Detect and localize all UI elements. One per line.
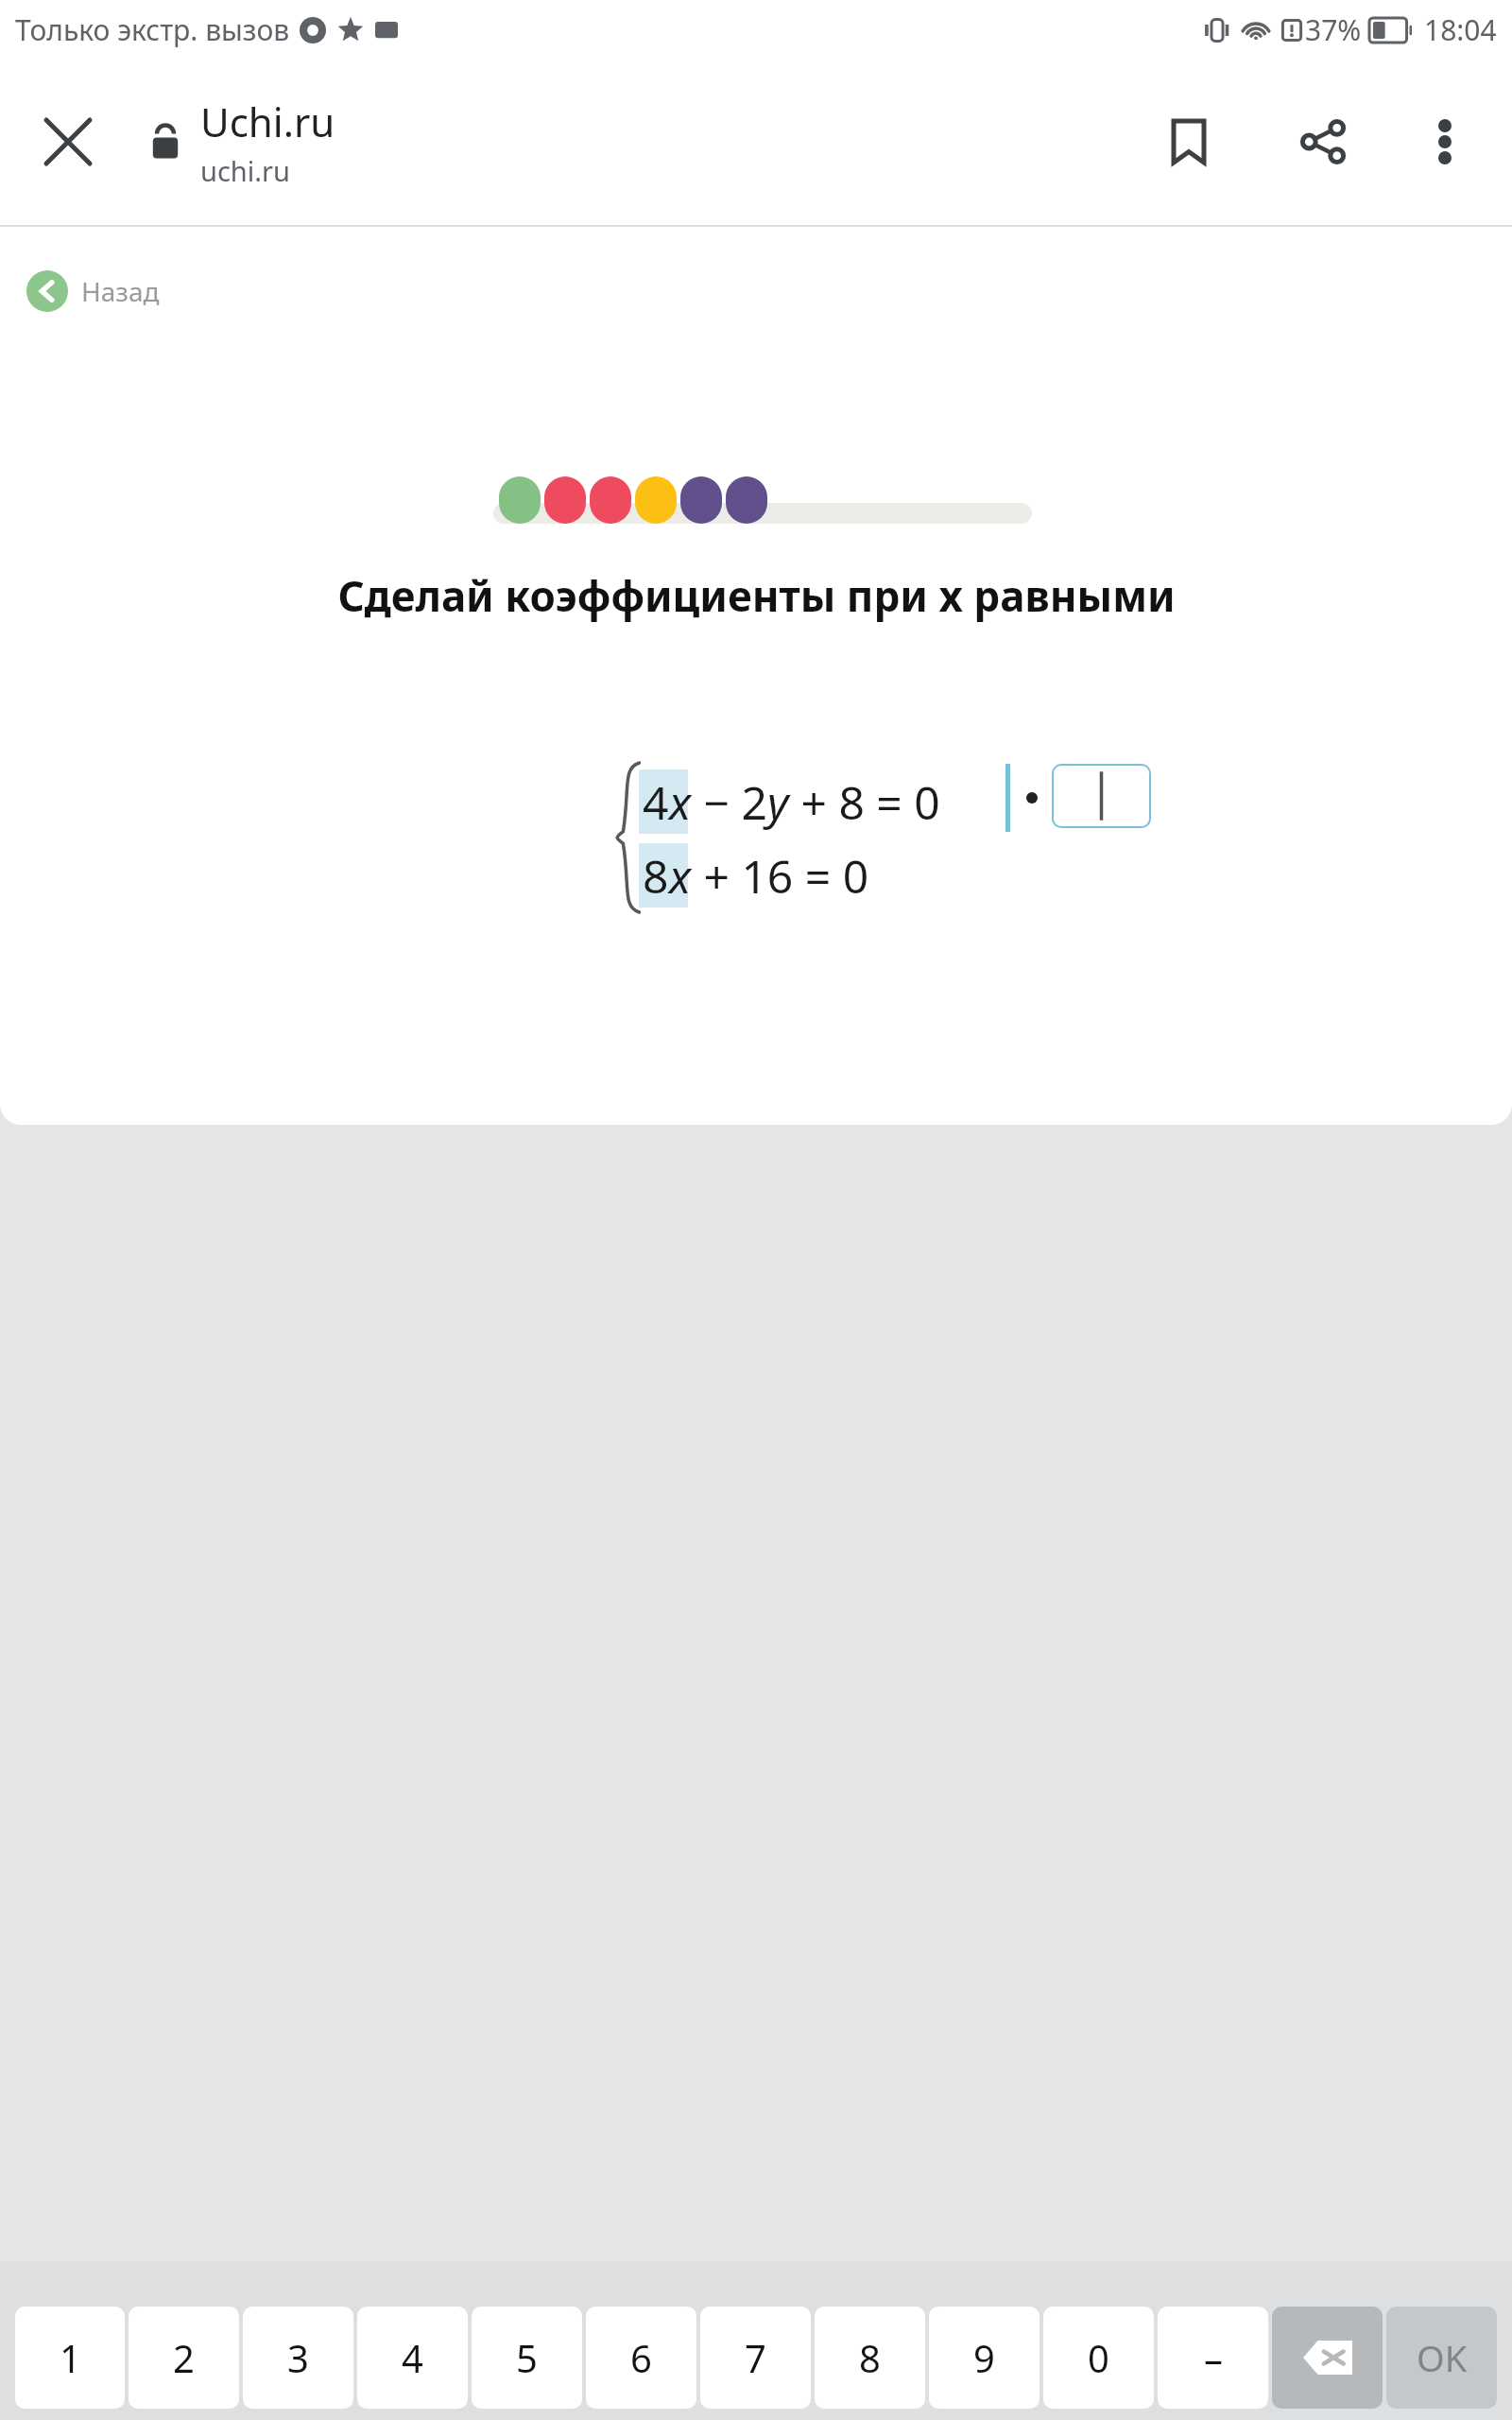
staticText: 9 [973,2332,995,2383]
staticText: 7 [745,2332,766,2383]
staticText: + 8 = 0 [789,771,940,833]
button[interactable]: 3 [243,2307,353,2409]
staticText: 5 [516,2332,538,2383]
button[interactable]: Назад [23,267,163,316]
button[interactable]: Close [19,93,117,191]
staticText: + 16 = 0 [692,845,869,907]
staticText: 3 [287,2332,309,2383]
staticText: 4 [402,2332,423,2383]
button[interactable]: 5 [472,2307,582,2409]
button[interactable]: 6 [586,2307,696,2409]
button[interactable]: – [1158,2307,1268,2409]
button[interactable]: 8 [815,2307,925,2409]
staticText: 2 [173,2332,195,2383]
staticText: uchi.ru [200,152,290,189]
button[interactable] [1052,764,1151,828]
staticText: 4 [643,771,669,833]
button[interactable]: 0 [1043,2307,1154,2409]
button[interactable]: 1 [15,2307,125,2409]
staticText: Только экстр. вызов [15,10,290,49]
staticText: x [669,845,692,907]
button[interactable]: 2 [129,2307,239,2409]
staticText: y [767,771,789,833]
staticText: 37% [1305,10,1362,49]
button[interactable]: Bookmark [1143,96,1234,187]
staticText: Сделай коэффициенты при x равными [337,567,1176,624]
button[interactable]: Share [1278,96,1368,187]
button[interactable]: More options [1402,99,1487,184]
staticText: − 2 [692,771,767,833]
button[interactable]: 9 [929,2307,1039,2409]
staticText: Uchi.ru [200,95,335,148]
button[interactable]: OK [1386,2307,1497,2409]
button[interactable]: Backspace [1272,2307,1383,2409]
staticText: 1 [60,2332,81,2383]
staticText: 8 [859,2332,881,2383]
staticText: x [669,771,692,833]
button[interactable]: 4 [357,2307,468,2409]
staticText: 18:04 [1424,10,1497,49]
staticText: 0 [1088,2332,1109,2383]
button[interactable]: 7 [700,2307,811,2409]
staticText: 6 [630,2332,652,2383]
staticText: Назад [81,273,160,309]
staticText: 8 [643,845,669,907]
staticText: OK [1417,2333,1468,2382]
staticText: – [1204,2332,1223,2383]
